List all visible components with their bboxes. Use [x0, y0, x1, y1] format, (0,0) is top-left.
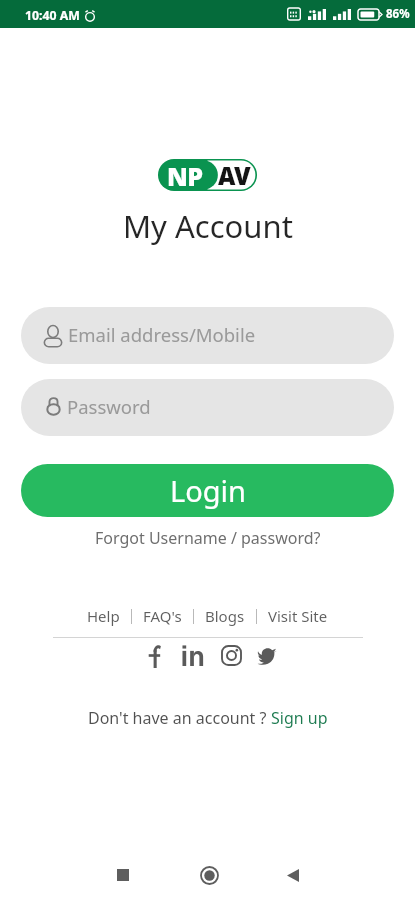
button[interactable]: Password — [21, 379, 394, 436]
staticText: Login — [170, 471, 246, 510]
button[interactable]: LinkedIn — [182, 645, 206, 668]
staticText: Don't have an account ? — [88, 707, 271, 729]
staticText: NP — [167, 159, 203, 191]
staticText: 86% — [386, 6, 410, 22]
button[interactable]: Back — [271, 853, 315, 897]
staticText: AV — [218, 159, 251, 191]
button[interactable]: Recents — [101, 853, 145, 897]
button[interactable]: Blogs — [205, 606, 245, 626]
staticText: 10:40 AM — [25, 7, 80, 24]
button[interactable]: FAQ's — [143, 606, 182, 626]
staticText: My Account — [123, 205, 293, 247]
button[interactable]: Facebook — [145, 645, 164, 668]
button[interactable]: Sign up — [271, 707, 328, 729]
button[interactable]: NP — [158, 159, 257, 191]
button[interactable]: Instagram — [220, 645, 242, 668]
button[interactable]: Visit Site — [268, 606, 328, 626]
button[interactable]: Twitter — [257, 645, 278, 668]
button[interactable]: Help — [87, 606, 120, 626]
button[interactable]: Home — [187, 853, 231, 897]
staticText: Email address/Mobile — [68, 322, 256, 347]
button[interactable]: Email address/Mobile — [21, 307, 394, 364]
button[interactable]: Forgot Username / password? — [95, 527, 321, 549]
button[interactable]: Login — [21, 464, 394, 517]
staticText: Password — [67, 394, 151, 419]
